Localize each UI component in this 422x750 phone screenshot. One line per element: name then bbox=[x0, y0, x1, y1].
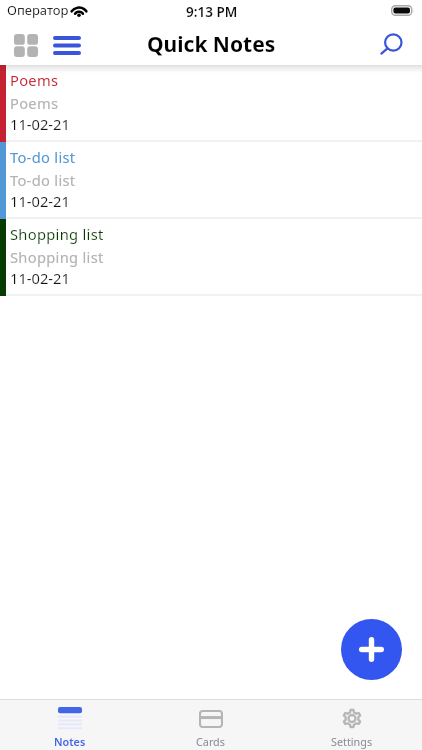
button[interactable]: Notes bbox=[0, 700, 140, 750]
staticText: Settings bbox=[331, 734, 373, 749]
staticText: Quick Notes bbox=[147, 30, 276, 59]
staticText: Shopping list bbox=[10, 224, 104, 244]
staticText: 11-02-21 bbox=[10, 114, 70, 134]
staticText: 11-02-21 bbox=[10, 191, 70, 211]
staticText: Cards bbox=[196, 734, 225, 749]
button[interactable]: Settings bbox=[281, 700, 422, 750]
staticText: Poems bbox=[10, 93, 59, 113]
staticText: Оператор bbox=[7, 1, 69, 19]
button[interactable]: Cards bbox=[140, 700, 281, 750]
button[interactable]: To-do list bbox=[0, 142, 422, 219]
staticText: Poems bbox=[10, 70, 59, 90]
staticText: To-do list bbox=[10, 170, 76, 190]
button[interactable]: Grid view bbox=[5, 28, 47, 62]
button[interactable]: Search bbox=[374, 26, 408, 62]
staticText: Notes bbox=[54, 734, 86, 749]
button[interactable]: Shopping list bbox=[0, 219, 422, 296]
button[interactable]: Add note bbox=[341, 619, 402, 680]
staticText: To-do list bbox=[10, 147, 76, 167]
staticText: 11-02-21 bbox=[10, 268, 70, 288]
button[interactable]: Poems bbox=[0, 65, 422, 142]
staticText: Shopping list bbox=[10, 247, 104, 267]
staticText: 9:13 PM bbox=[186, 3, 238, 21]
button[interactable]: List view bbox=[47, 30, 87, 60]
